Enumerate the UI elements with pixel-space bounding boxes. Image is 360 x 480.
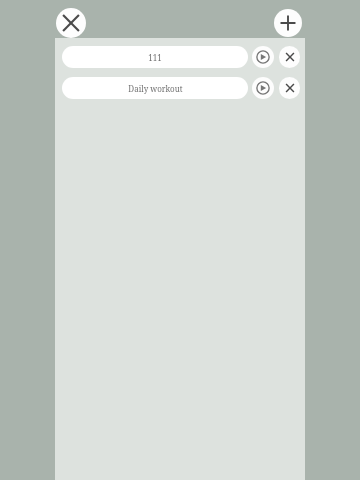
button[interactable]: Add exercise: [274, 9, 302, 37]
staticText: Daily workout: [128, 83, 183, 94]
button[interactable]: 111: [62, 46, 248, 68]
button[interactable]: Remove: [279, 77, 300, 99]
button[interactable]: Start timer: [252, 46, 274, 68]
staticText: 111: [148, 52, 162, 63]
button[interactable]: Start timer: [252, 77, 274, 99]
button[interactable]: Close: [56, 8, 86, 38]
button[interactable]: Daily workout: [62, 77, 248, 99]
button[interactable]: Remove: [279, 46, 300, 68]
